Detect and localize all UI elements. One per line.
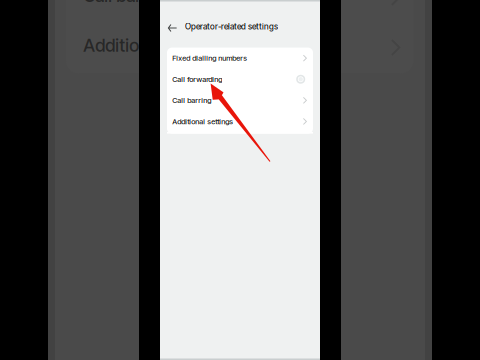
staticText: Call barring — [172, 96, 211, 105]
staticText: Additional settings — [172, 117, 233, 126]
button[interactable]: Additional settings — [167, 111, 313, 132]
staticText: Call barring — [83, 0, 171, 6]
button[interactable]: Call forwarding — [167, 69, 313, 90]
button[interactable]: Fixed dialling numbers — [167, 48, 313, 69]
staticText: Additional settings — [83, 35, 230, 56]
button[interactable]: Back — [165, 19, 179, 33]
staticText: Operator-related settings — [185, 21, 278, 31]
staticText: Fixed dialling numbers — [172, 54, 247, 63]
button[interactable]: Call barring — [167, 90, 313, 111]
staticText: Call forwarding — [172, 75, 222, 84]
